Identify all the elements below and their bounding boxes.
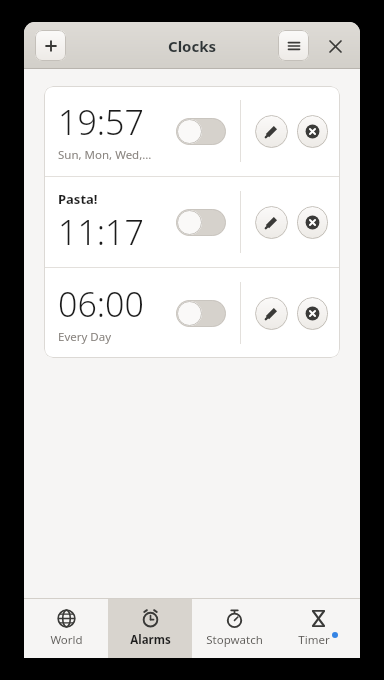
staticText: 06:00 <box>58 281 144 327</box>
button[interactable]: Toggle alarm <box>176 209 226 236</box>
staticText: Stopwatch <box>206 632 263 648</box>
staticText: World <box>50 632 83 648</box>
staticText: 11:17 <box>58 209 144 255</box>
button[interactable]: 06:00 <box>44 268 340 358</box>
button[interactable]: Delete alarm <box>297 115 328 148</box>
button[interactable]: Pasta! <box>44 177 340 267</box>
staticText: Every Day <box>58 329 112 345</box>
button[interactable]: Toggle alarm <box>176 300 226 327</box>
button[interactable]: Timer <box>276 599 360 658</box>
button[interactable]: World <box>24 599 108 658</box>
button[interactable]: Toggle alarm <box>176 118 226 145</box>
staticText: 19:57 <box>58 99 144 145</box>
button[interactable]: Edit alarm <box>255 297 288 330</box>
button[interactable]: Menu <box>278 30 309 61</box>
button[interactable]: Alarms <box>108 599 192 658</box>
button[interactable]: Edit alarm <box>255 206 288 239</box>
staticText: Pasta! <box>58 190 98 208</box>
button[interactable]: Edit alarm <box>255 115 288 148</box>
staticText: Timer <box>298 632 330 648</box>
button[interactable]: Delete alarm <box>297 297 328 330</box>
button[interactable]: Close <box>322 33 348 59</box>
button[interactable]: Delete alarm <box>297 206 328 239</box>
button[interactable]: 19:57 <box>44 86 340 176</box>
staticText: Sun, Mon, Wed,… <box>58 147 152 163</box>
button[interactable]: Stopwatch <box>192 599 276 658</box>
button[interactable]: Add alarm <box>35 30 66 61</box>
staticText: Alarms <box>130 632 171 648</box>
staticText: Clocks <box>168 36 217 56</box>
